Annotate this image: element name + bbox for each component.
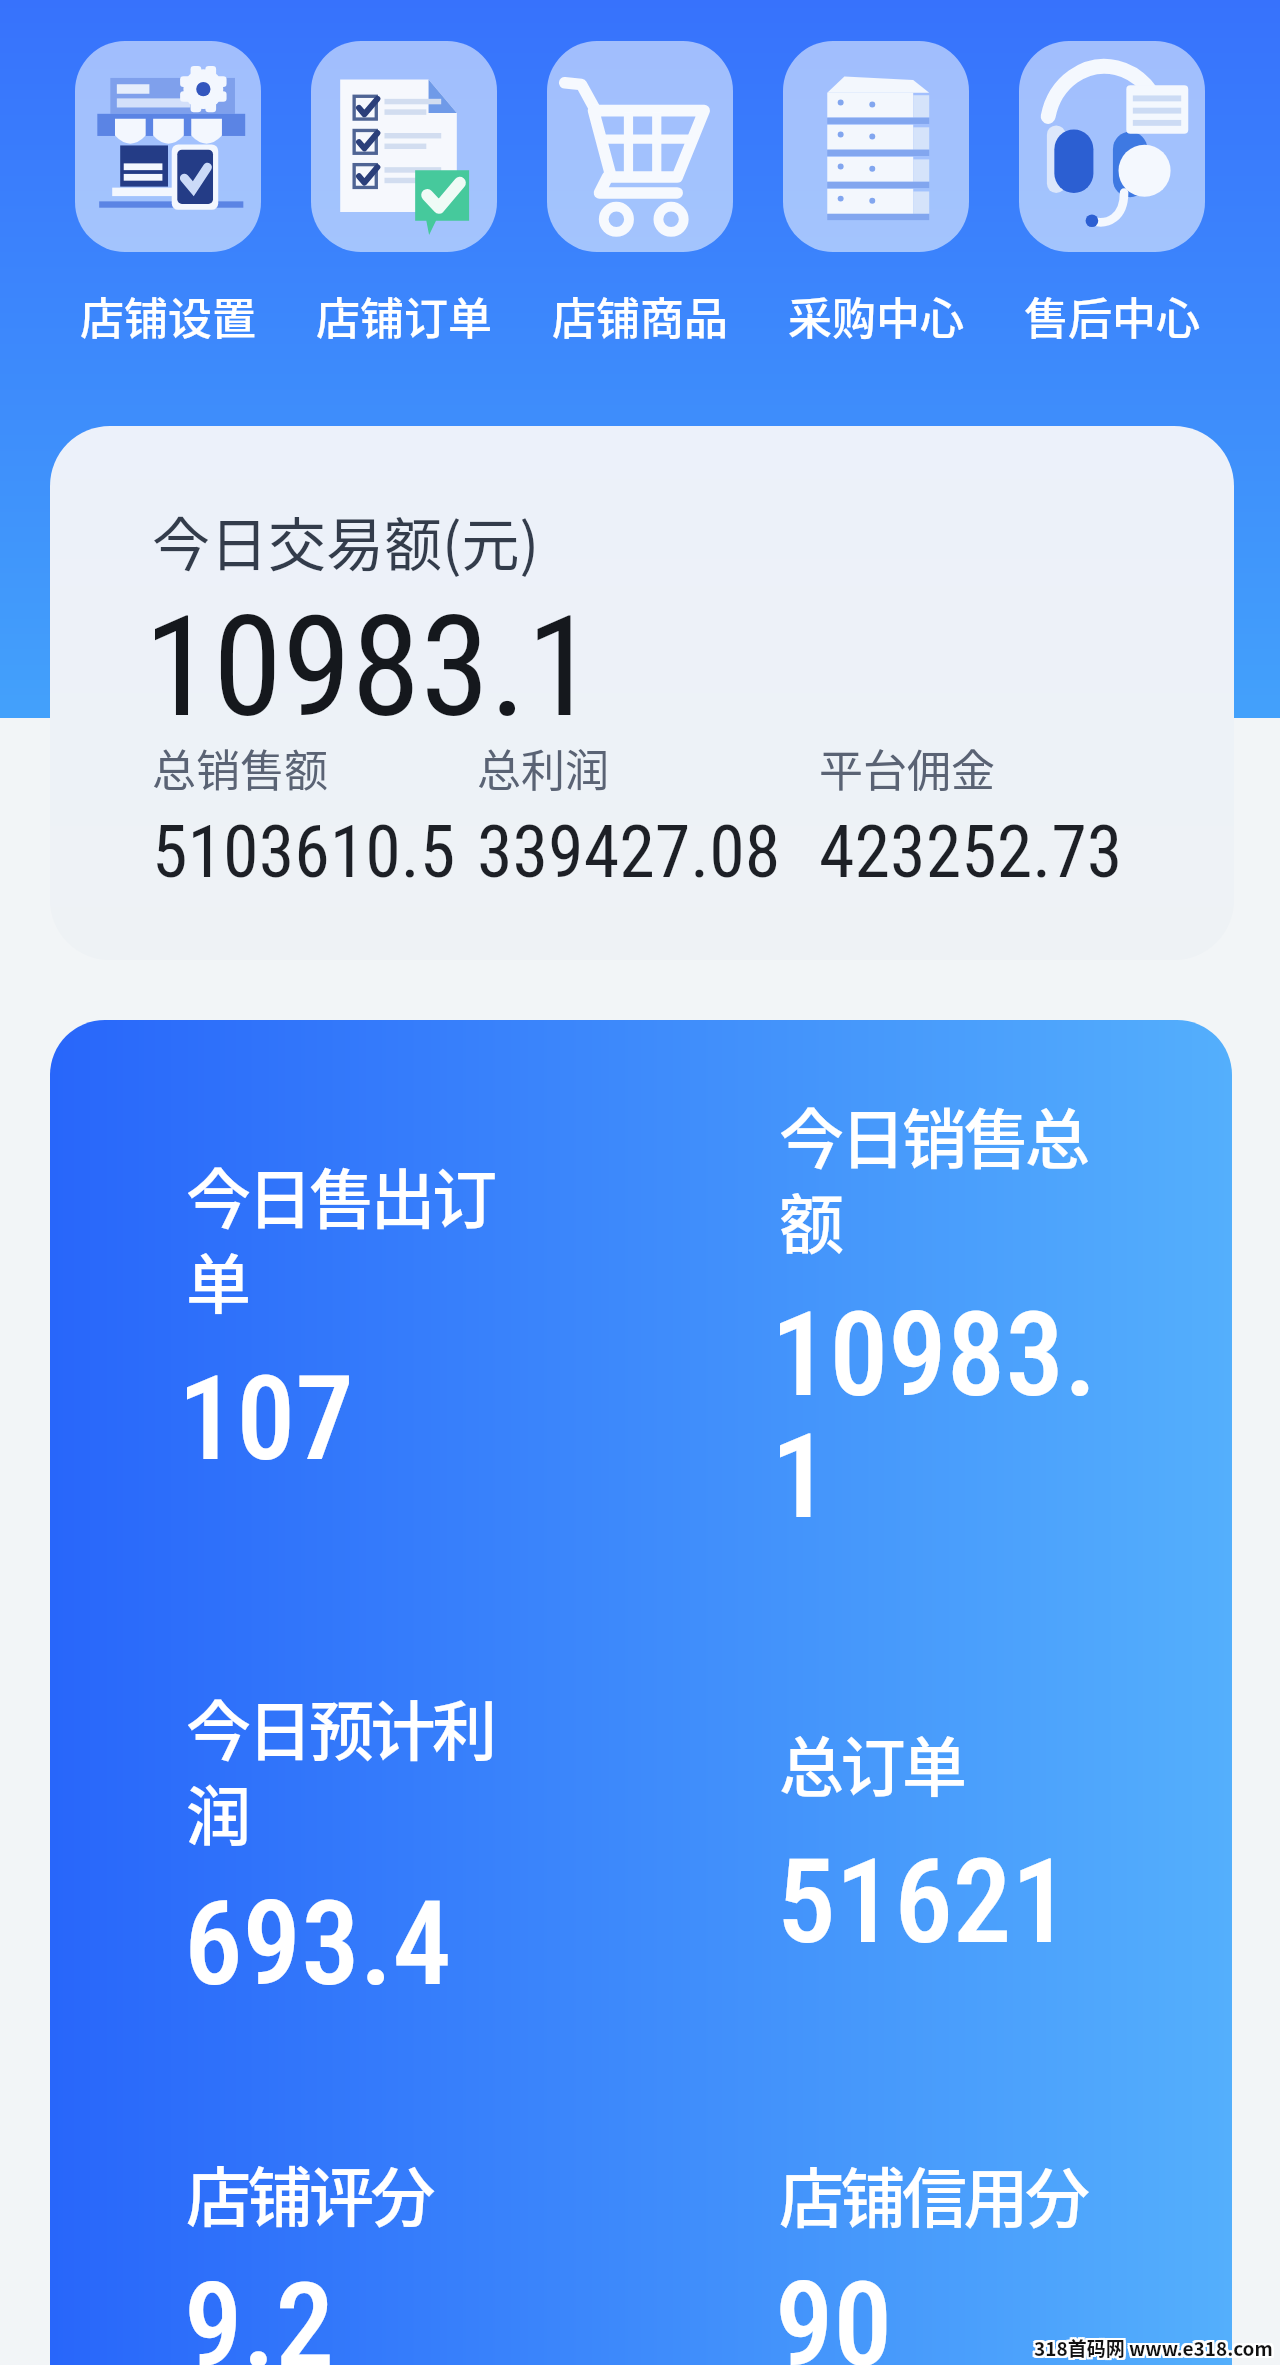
other: 店铺订单 (311, 41, 497, 252)
staticText: 423252.73 (819, 810, 1123, 894)
staticText: 90 (775, 2256, 893, 2365)
button[interactable]: 今日售出订 单 (160, 1120, 720, 1520)
staticText: 318首码网 www.e318.com (1034, 2334, 1273, 2362)
staticText: 售后中心 (994, 284, 1230, 348)
button[interactable]: 店铺评分 (160, 2120, 720, 2365)
staticText: 店铺订单 (286, 284, 522, 348)
staticText: 总订单 (779, 1716, 964, 1810)
staticText: 今日销售总 额 (779, 1088, 1087, 1267)
staticText: 10983.1 (144, 585, 596, 749)
staticText: 5103610.5 (152, 810, 456, 894)
staticText: 318首码网 www.e318.com (1034, 2332, 1273, 2360)
staticText: 318首码网 www.e318.com (1032, 2332, 1271, 2360)
staticText: 318首码网 www.e318.com (1036, 2336, 1275, 2364)
staticText: 10983. 1 (771, 1286, 1097, 1546)
staticText: 107 (178, 1350, 354, 1487)
staticText: 今日交易额(元) (152, 499, 540, 583)
button[interactable]: 今日交易额(元) (50, 426, 1234, 960)
staticText: 平台佣金 (819, 736, 995, 800)
other: 售后中心 (1019, 41, 1205, 252)
button[interactable]: 店铺订单 (286, 30, 522, 350)
other: 采购中心 (783, 41, 969, 252)
button[interactable]: 店铺设置 (50, 30, 286, 350)
button[interactable]: 店铺信用分 (755, 2120, 1225, 2365)
button[interactable]: 总订单 (755, 1690, 1225, 1990)
staticText: 总利润 (477, 736, 609, 800)
other: 店铺设置 (75, 41, 261, 252)
staticText: 今日预计利 润 (186, 1680, 494, 1859)
button[interactable]: 店铺商品 (522, 30, 758, 350)
staticText: 51621 (777, 1833, 1071, 1970)
staticText: 693.4 (184, 1875, 452, 2012)
staticText: 318首码网 www.e318.com (1034, 2334, 1273, 2362)
button[interactable]: 今日销售总 额 (755, 1060, 1225, 1540)
button[interactable]: 售后中心 (994, 30, 1230, 350)
staticText: 318首码网 www.e318.com (1032, 2334, 1271, 2362)
staticText: 318首码网 www.e318.com (1036, 2334, 1275, 2362)
staticText: 店铺设置 (50, 284, 286, 348)
staticText: 318首码网 www.e318.com (1036, 2332, 1275, 2360)
staticText: 店铺信用分 (779, 2147, 1087, 2241)
button[interactable]: 今日预计利 润 (160, 1650, 720, 2050)
staticText: 339427.08 (477, 810, 781, 894)
staticText: 店铺评分 (186, 2146, 433, 2240)
staticText: 采购中心 (758, 284, 994, 348)
button[interactable]: 采购中心 (758, 30, 994, 350)
staticText: 店铺商品 (522, 284, 758, 348)
staticText: 318首码网 www.e318.com (1032, 2336, 1271, 2364)
staticText: 今日售出订 单 (186, 1148, 494, 1327)
staticText: 总销售额 (152, 736, 328, 800)
staticText: 9.2 (184, 2257, 335, 2365)
other: 店铺商品 (547, 41, 733, 252)
staticText: 318首码网 www.e318.com (1034, 2336, 1273, 2364)
